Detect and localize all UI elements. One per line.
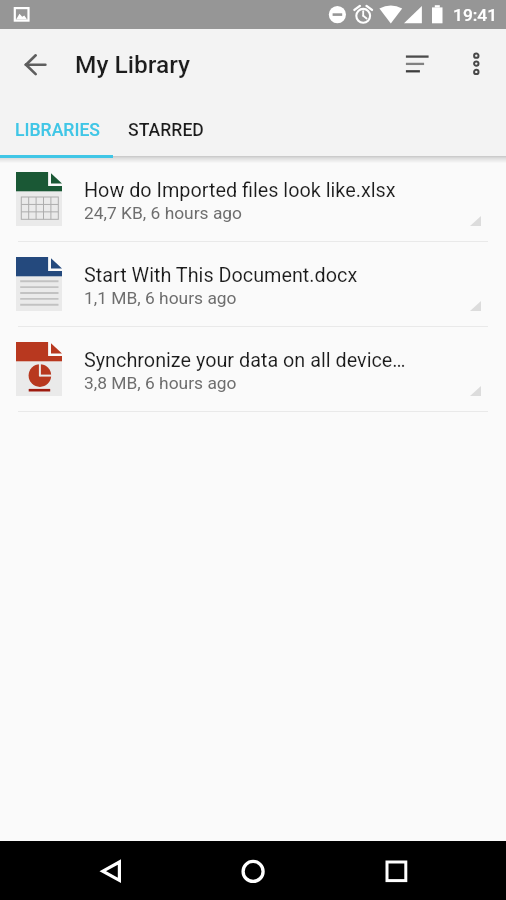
button[interactable]: How do Imported files look like.xlsx	[0, 157, 506, 242]
staticText: 19:41	[453, 5, 498, 25]
staticText: How do Imported files look like.xlsx	[84, 179, 396, 202]
button[interactable]: Sort	[393, 40, 441, 88]
staticText: 24,7 KB, 6 hours ago	[84, 203, 243, 223]
button[interactable]: Home	[224, 842, 282, 900]
staticText: Start With This Document.docx	[84, 264, 358, 287]
staticText: STARRED	[128, 120, 204, 141]
button[interactable]: Synchronize your data on all device…	[0, 327, 506, 412]
button[interactable]: Recent apps	[366, 842, 424, 900]
button[interactable]: LIBRARIES	[0, 100, 113, 156]
staticText: LIBRARIES	[15, 120, 100, 141]
staticText: Synchronize your data on all device…	[84, 349, 406, 372]
button[interactable]: Start With This Document.docx	[0, 242, 506, 327]
button[interactable]: STARRED	[113, 100, 226, 156]
button[interactable]: Back	[82, 842, 140, 900]
button[interactable]: Navigate up	[7, 36, 64, 93]
button[interactable]: More options	[453, 40, 501, 88]
staticText: My Library	[75, 50, 191, 79]
staticText: 1,1 MB, 6 hours ago	[84, 288, 237, 308]
staticText: 3,8 MB, 6 hours ago	[84, 373, 237, 393]
